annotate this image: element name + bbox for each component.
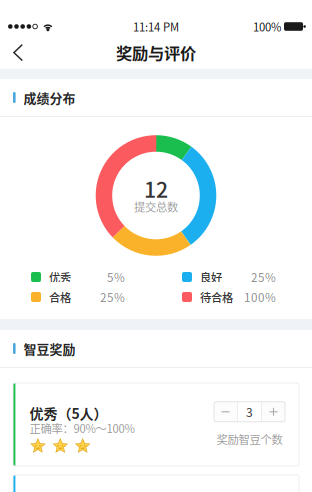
staticText: 3 xyxy=(246,403,253,420)
staticText: 良好 xyxy=(200,269,222,285)
staticText: 5% xyxy=(107,268,125,285)
staticText: 25% xyxy=(100,288,125,305)
staticText: 100% xyxy=(244,288,276,305)
staticText: 智豆奖励 xyxy=(24,339,76,358)
staticText: 优秀 xyxy=(49,269,71,285)
staticText: 100% xyxy=(253,18,281,35)
staticText: 优秀（5人） xyxy=(29,403,107,423)
staticText: 正确率：90%～100% xyxy=(29,420,134,436)
button[interactable]: 减少 xyxy=(214,402,237,422)
staticText: 提交总数 xyxy=(134,198,178,215)
staticText: 合格 xyxy=(49,289,71,305)
staticText: 成绩分布 xyxy=(24,88,76,107)
staticText: 25% xyxy=(251,268,276,285)
staticText: 11:14 PM xyxy=(133,18,179,35)
staticText: 待合格 xyxy=(200,289,233,305)
button[interactable]: 返回 xyxy=(2,36,42,69)
button[interactable]: 增加 xyxy=(262,402,285,422)
staticText: 12 xyxy=(144,173,168,204)
staticText: 奖励与评价 xyxy=(116,41,196,64)
staticText: 奖励智豆个数 xyxy=(216,431,282,447)
